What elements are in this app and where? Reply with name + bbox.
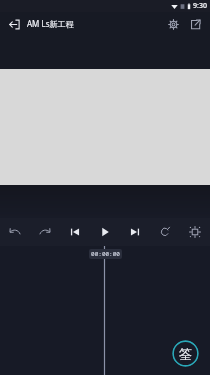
staticText: 筌 <box>179 346 192 362</box>
staticText: 00:00:00 <box>91 250 120 258</box>
button[interactable]: Export <box>186 15 204 33</box>
button[interactable]: Play <box>90 218 120 246</box>
staticText: 9:30 <box>193 1 207 11</box>
button[interactable]: Skip to start <box>60 218 90 246</box>
button[interactable]: Loop <box>150 218 180 246</box>
button[interactable]: Redo <box>30 218 60 246</box>
button[interactable]: Settings <box>164 15 182 33</box>
button[interactable]: Back <box>6 16 22 32</box>
button[interactable]: Add media <box>172 340 199 367</box>
button[interactable]: Skip to end <box>120 218 150 246</box>
staticText: AM Ls新工程 <box>27 18 164 29</box>
button[interactable]: Undo <box>0 218 30 246</box>
button[interactable]: Fit to screen <box>180 218 210 246</box>
